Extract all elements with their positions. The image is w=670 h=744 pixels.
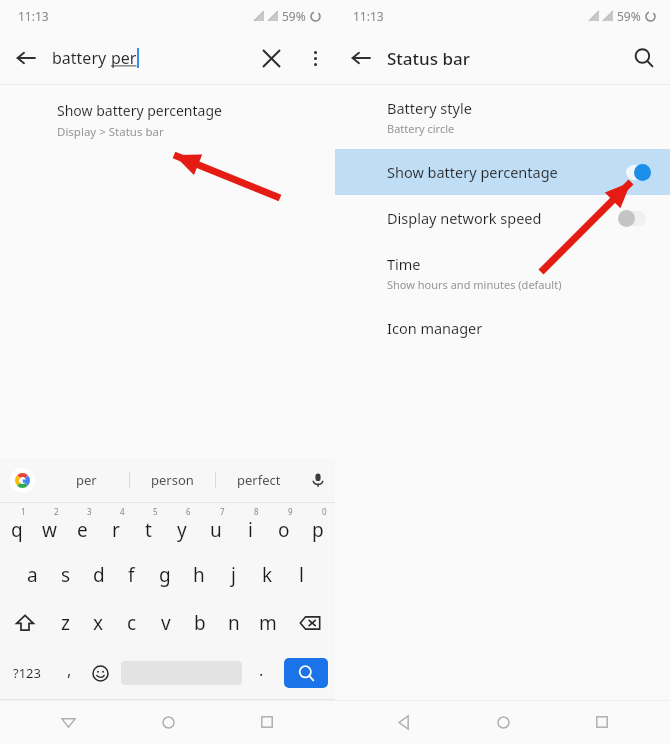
staticText: 11:13 bbox=[18, 8, 49, 24]
button[interactable]: j bbox=[216, 551, 250, 599]
staticText: 8 bbox=[254, 506, 259, 517]
staticText: Status bar bbox=[387, 47, 470, 70]
button[interactable]: Voice input bbox=[301, 458, 335, 502]
staticText: 7 bbox=[220, 506, 225, 517]
button[interactable]: Back bbox=[381, 700, 425, 744]
staticText: p bbox=[312, 517, 324, 543]
staticText: 5 bbox=[153, 506, 158, 517]
button[interactable]: Search bbox=[277, 647, 335, 699]
staticText: , bbox=[67, 659, 72, 681]
staticText: t bbox=[145, 517, 152, 543]
staticText: 0 bbox=[322, 506, 327, 517]
button[interactable]: m bbox=[251, 599, 285, 647]
button[interactable]: l bbox=[284, 551, 318, 599]
staticText: x bbox=[93, 610, 104, 636]
button[interactable]: per bbox=[44, 458, 129, 502]
staticText: 1 bbox=[21, 506, 26, 517]
button[interactable]: c bbox=[115, 599, 149, 647]
button[interactable]: 4 bbox=[99, 503, 132, 551]
staticText: Time bbox=[387, 254, 421, 274]
button[interactable]: 3 bbox=[66, 503, 99, 551]
staticText: ?123 bbox=[13, 664, 41, 682]
staticText: Icon manager bbox=[387, 318, 483, 338]
staticText: Battery circle bbox=[387, 121, 455, 136]
button[interactable]: k bbox=[250, 551, 284, 599]
staticText: u bbox=[210, 517, 222, 543]
staticText: e bbox=[77, 517, 88, 543]
staticText: c bbox=[127, 610, 137, 636]
button[interactable]: 0 bbox=[301, 503, 335, 551]
staticText: Show hours and minutes (default) bbox=[387, 277, 562, 292]
staticText: Display network speed bbox=[387, 208, 542, 228]
button[interactable]: , bbox=[54, 647, 85, 699]
button[interactable]: b bbox=[183, 599, 217, 647]
button[interactable]: ?123 bbox=[0, 647, 54, 699]
button[interactable]: Show battery percentage bbox=[0, 85, 335, 152]
staticText: k bbox=[262, 562, 273, 588]
button[interactable]: n bbox=[217, 599, 251, 647]
button[interactable]: Shift bbox=[0, 599, 49, 647]
button[interactable]: Show battery percentage bbox=[335, 149, 670, 195]
button[interactable]: d bbox=[82, 551, 115, 599]
button[interactable]: s bbox=[49, 551, 82, 599]
button[interactable]: person bbox=[130, 458, 215, 502]
button[interactable]: Home bbox=[146, 700, 190, 744]
button[interactable]: Recents bbox=[580, 700, 624, 744]
staticText: o bbox=[278, 517, 290, 543]
staticText: f bbox=[128, 562, 135, 588]
staticText: 2 bbox=[54, 506, 59, 517]
staticText: j bbox=[231, 562, 236, 588]
staticText: 59% bbox=[282, 8, 306, 24]
button[interactable]: x bbox=[82, 599, 115, 647]
button[interactable]: 1 bbox=[0, 503, 33, 551]
button[interactable]: z bbox=[49, 599, 82, 647]
staticText: a bbox=[27, 562, 38, 588]
staticText: 9 bbox=[288, 506, 293, 517]
button[interactable]: Search bbox=[618, 32, 670, 84]
button[interactable]: 9 bbox=[267, 503, 301, 551]
button[interactable]: Backspace bbox=[285, 599, 335, 647]
button[interactable]: Google bbox=[0, 458, 44, 502]
staticText: z bbox=[61, 610, 70, 636]
button[interactable]: 8 bbox=[233, 503, 267, 551]
button[interactable]: h bbox=[182, 551, 216, 599]
button[interactable]: Home bbox=[481, 700, 525, 744]
button[interactable]: More options bbox=[295, 38, 335, 78]
button[interactable]: 2 bbox=[33, 503, 66, 551]
button[interactable]: perfect bbox=[216, 458, 301, 502]
button[interactable]: 7 bbox=[199, 503, 233, 551]
button[interactable]: 5 bbox=[132, 503, 165, 551]
staticText: 59% bbox=[617, 8, 641, 24]
staticText: d bbox=[93, 562, 105, 588]
button[interactable]: f bbox=[115, 551, 148, 599]
button[interactable]: v bbox=[149, 599, 183, 647]
button[interactable]: 6 bbox=[165, 503, 199, 551]
staticText: per bbox=[76, 471, 97, 489]
button[interactable]: . bbox=[246, 647, 277, 699]
staticText: s bbox=[61, 562, 71, 588]
other: Toggle Show battery percentage bbox=[618, 162, 652, 182]
button[interactable]: Back bbox=[335, 32, 387, 84]
staticText: m bbox=[259, 610, 277, 636]
staticText: Show battery percentage bbox=[387, 162, 558, 182]
staticText: Display > Status bar bbox=[57, 124, 164, 140]
button[interactable]: Recents bbox=[245, 700, 289, 744]
button[interactable]: Hide keyboard bbox=[46, 700, 90, 744]
button[interactable]: a bbox=[16, 551, 49, 599]
staticText: n bbox=[228, 610, 240, 636]
button[interactable]: Back bbox=[0, 32, 52, 84]
staticText: q bbox=[11, 517, 23, 543]
button[interactable]: Time bbox=[335, 241, 670, 305]
button[interactable]: Space bbox=[116, 647, 246, 699]
button[interactable]: g bbox=[148, 551, 182, 599]
staticText: w bbox=[42, 517, 57, 543]
staticText: h bbox=[193, 562, 205, 588]
button[interactable]: Emoji bbox=[85, 647, 116, 699]
button[interactable]: Clear bbox=[247, 34, 295, 82]
button[interactable]: Display network speed bbox=[335, 195, 670, 241]
button[interactable]: Battery style bbox=[335, 85, 670, 149]
staticText: person bbox=[151, 471, 194, 489]
button[interactable]: Icon manager bbox=[335, 305, 670, 351]
staticText: g bbox=[159, 562, 171, 588]
staticText: 3 bbox=[87, 506, 92, 517]
